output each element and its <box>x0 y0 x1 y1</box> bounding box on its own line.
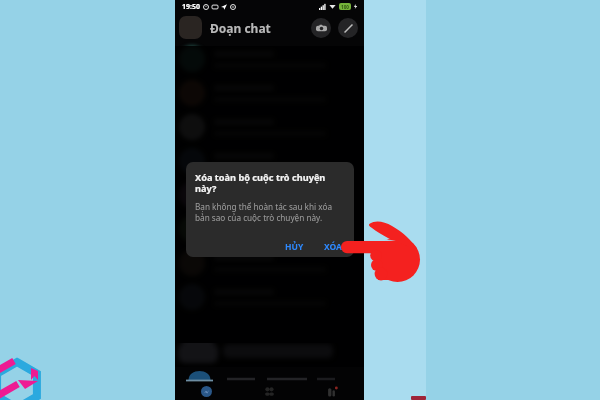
button[interactable]: HỦY <box>281 238 308 256</box>
staticText: 19:50 <box>182 2 200 12</box>
staticText: Đoạn chat <box>210 20 271 36</box>
button[interactable] <box>179 76 357 110</box>
button[interactable]: Camera <box>311 18 331 38</box>
other: Pointing hand <box>0 0 600 400</box>
staticText: Xóa toàn bộ cuộc trò chuyện này? <box>195 171 345 195</box>
button[interactable]: Stories <box>301 367 364 400</box>
button[interactable]: XÓA <box>321 238 345 256</box>
staticText: HỦY <box>285 241 304 253</box>
button[interactable] <box>179 144 357 178</box>
button[interactable] <box>179 246 357 280</box>
button[interactable] <box>179 212 357 246</box>
button[interactable] <box>179 110 357 144</box>
staticText: Bạn không thể hoàn tác sau khi xóa bản s… <box>195 201 345 223</box>
staticText: XÓA <box>324 241 342 253</box>
button[interactable]: New message <box>338 18 358 38</box>
button[interactable] <box>179 42 357 76</box>
staticText: 100 <box>341 4 349 10</box>
button[interactable]: People <box>238 367 301 400</box>
button[interactable]: Chats <box>175 367 238 400</box>
button[interactable] <box>179 178 357 212</box>
other: Logo <box>0 0 600 400</box>
